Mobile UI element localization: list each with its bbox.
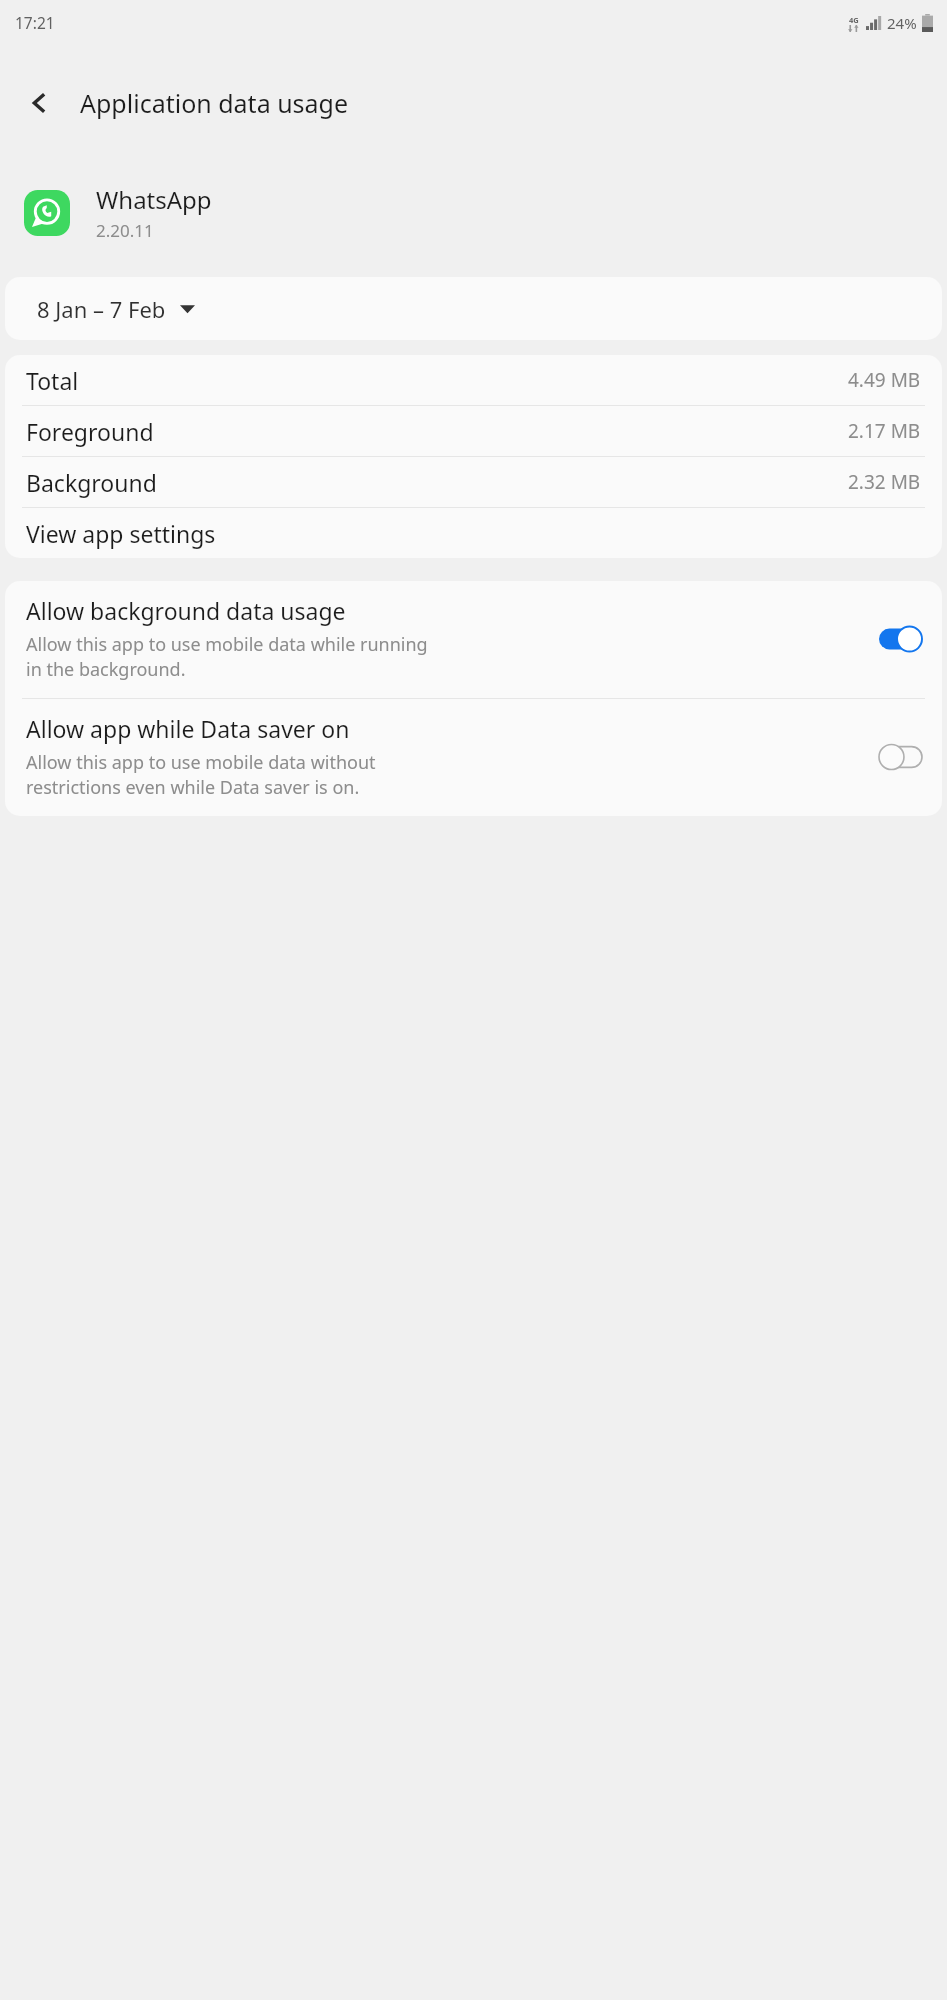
staticText: Allow this app to use mobile data while …	[26, 632, 428, 657]
staticText: Background	[26, 467, 157, 498]
staticText: 2.17 MB	[848, 418, 921, 444]
staticText: 24%	[887, 13, 917, 33]
button[interactable]: View app settings	[5, 508, 942, 558]
button[interactable]: Total	[5, 355, 942, 405]
staticText: Allow background data usage	[26, 595, 346, 626]
staticText: Total	[26, 365, 79, 396]
staticText: View app settings	[26, 518, 216, 549]
staticText: 4.49 MB	[848, 367, 921, 393]
staticText: Application data usage	[80, 86, 349, 120]
staticText: restrictions even while Data saver is on…	[26, 775, 360, 800]
button[interactable]: On	[879, 626, 922, 652]
staticText: 17:21	[15, 12, 55, 33]
staticText: Allow app while Data saver on	[26, 713, 350, 744]
staticText: Foreground	[26, 416, 154, 447]
staticText: 2.20.11	[96, 219, 154, 242]
button[interactable]: Foreground	[5, 406, 942, 456]
staticText: 2.32 MB	[848, 469, 921, 495]
staticText: WhatsApp	[96, 183, 212, 216]
button[interactable]: 8 Jan – 7 Feb	[5, 277, 942, 340]
button[interactable]: Background	[5, 457, 942, 507]
button[interactable]: Allow app while Data saver on	[5, 699, 942, 816]
button[interactable]: Back	[12, 75, 68, 131]
staticText: in the background.	[26, 657, 186, 682]
staticText: 8 Jan – 7 Feb	[37, 294, 166, 324]
staticText: Allow this app to use mobile data withou…	[26, 750, 376, 775]
staticText: 4G	[849, 15, 859, 25]
button[interactable]: Off	[879, 744, 922, 770]
button[interactable]: Allow background data usage	[5, 581, 942, 698]
